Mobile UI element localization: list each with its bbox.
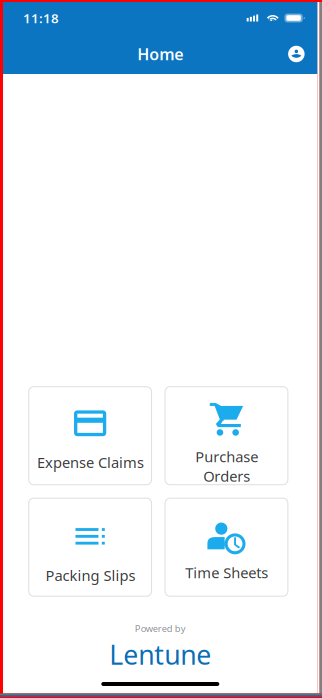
button[interactable]: Expense Claims: [29, 387, 152, 485]
staticText: Purchase Orders: [195, 447, 258, 486]
staticText: 11:18: [23, 9, 59, 27]
staticText: Expense Claims: [37, 453, 144, 472]
staticText: Time Sheets: [185, 563, 268, 582]
staticText: Packing Slips: [45, 566, 135, 585]
button[interactable]: Purchase Orders: [165, 387, 288, 485]
staticText: Lentune: [109, 637, 211, 672]
button[interactable]: Account: [282, 40, 311, 68]
staticText: Home: [137, 43, 183, 65]
staticText: Powered by: [135, 622, 186, 635]
button[interactable]: Time Sheets: [165, 498, 288, 596]
button[interactable]: Packing Slips: [29, 498, 152, 596]
